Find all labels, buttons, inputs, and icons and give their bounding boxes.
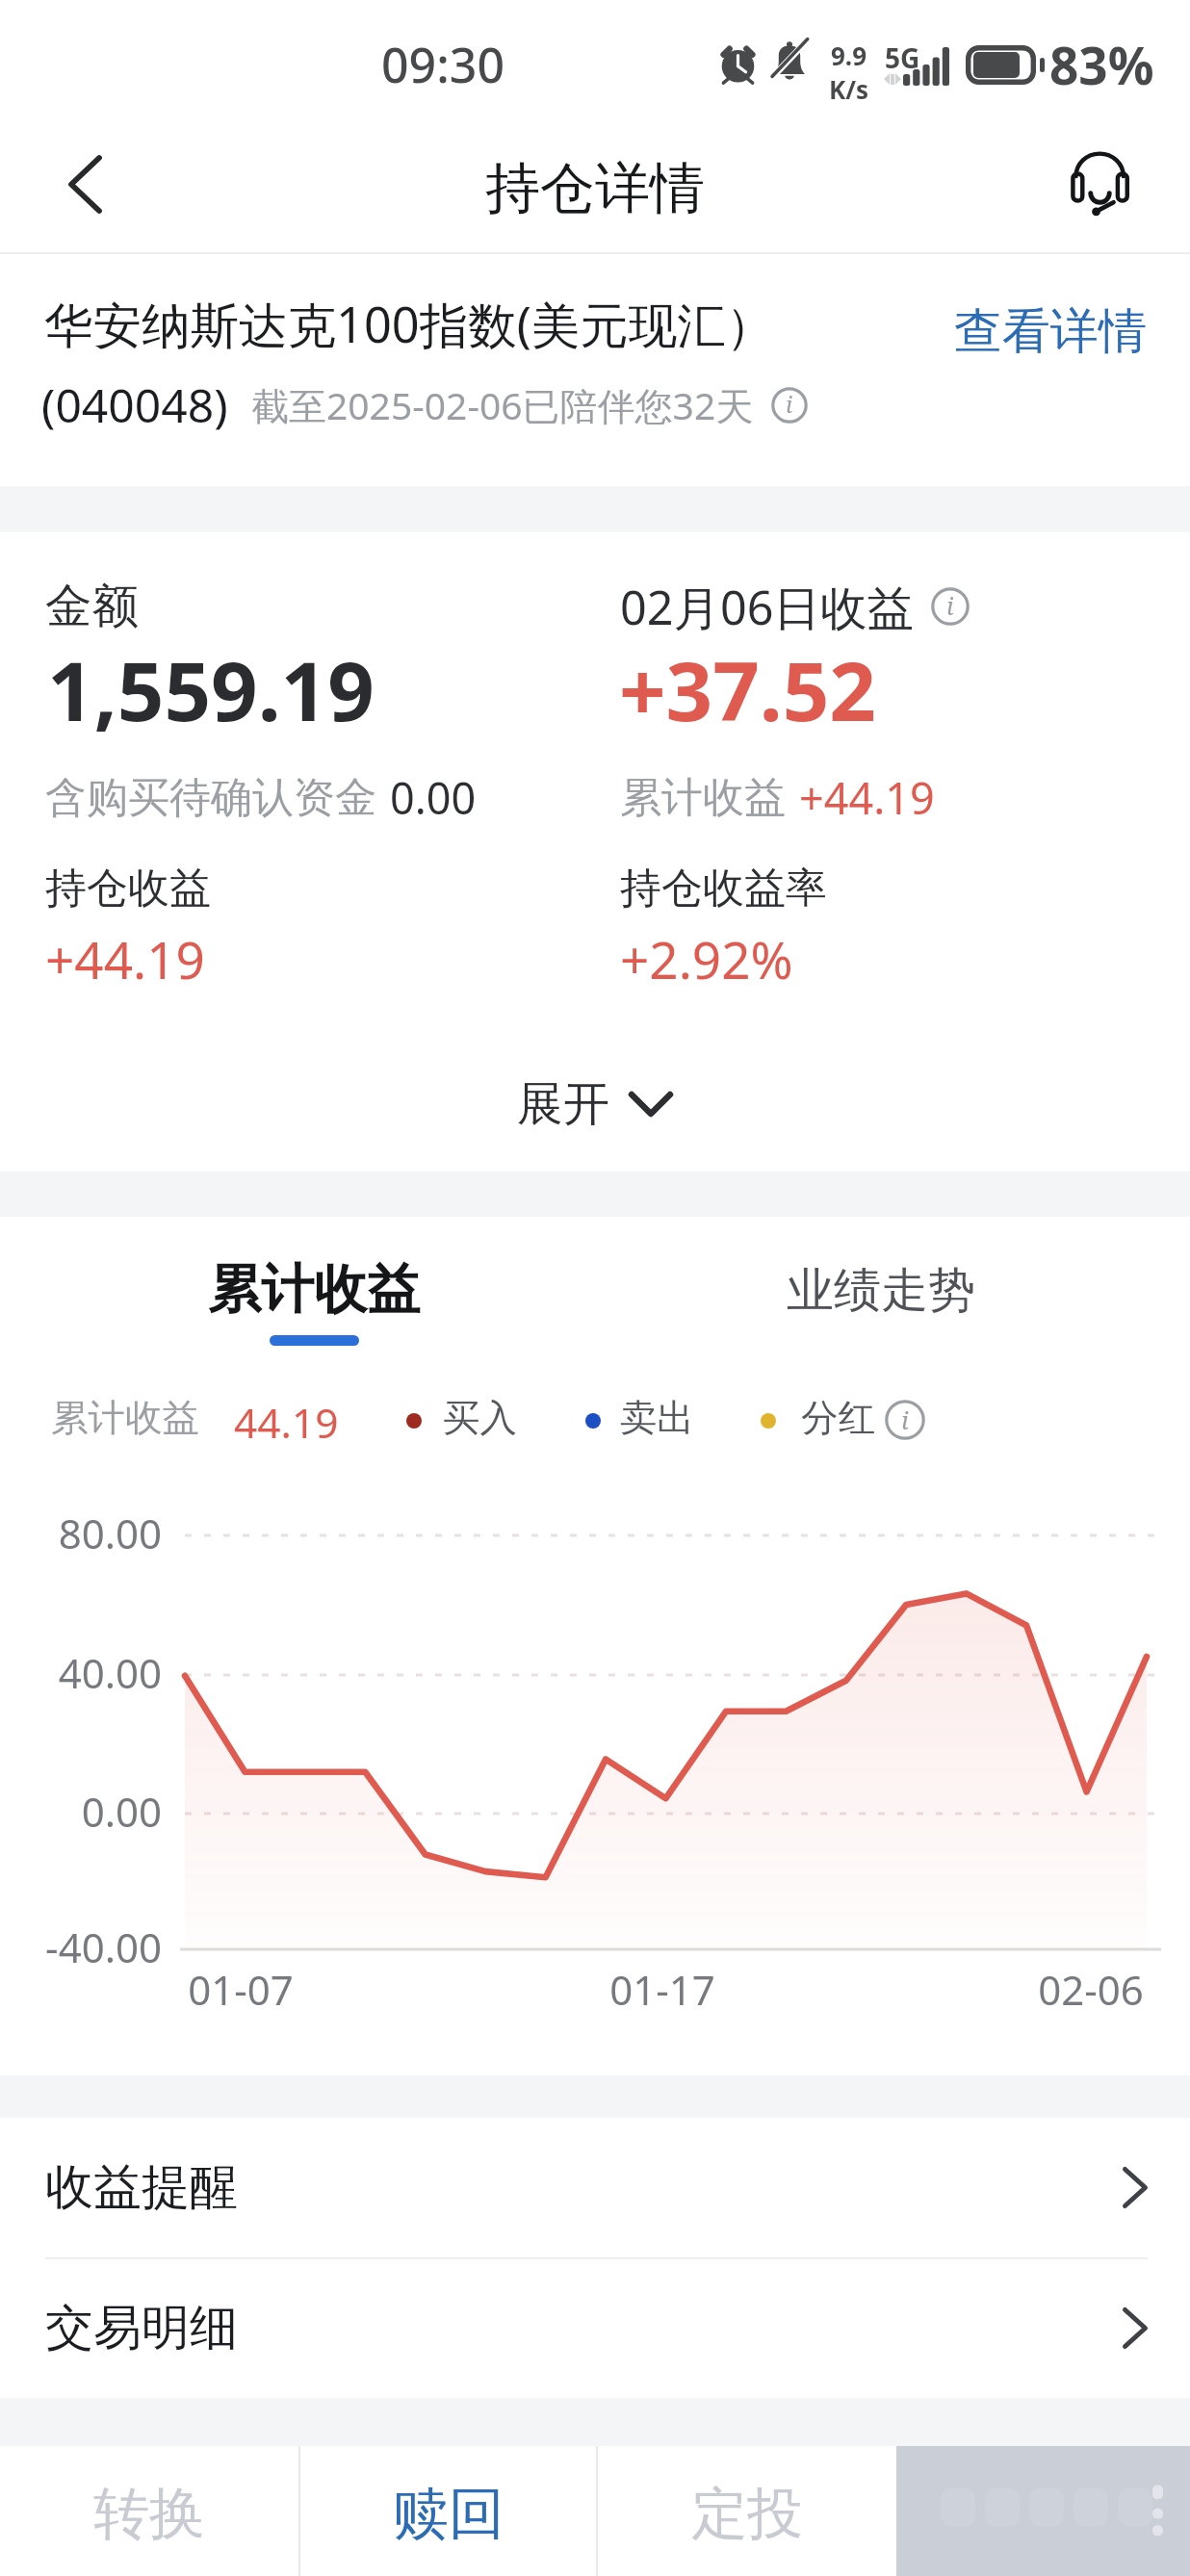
staticText: 02月06日收益 [620, 575, 914, 638]
staticText: 截至2025-02-06已陪伴您32天 [251, 379, 754, 430]
staticText: 金额 [45, 577, 139, 635]
button[interactable]: 收益提醒 [0, 2118, 1190, 2257]
staticText: 业绩走势 [787, 1261, 975, 1321]
staticText: 展开 [517, 1075, 609, 1133]
staticText: (040048) [41, 374, 228, 436]
staticText: i [786, 389, 793, 420]
staticText: K/s [829, 72, 869, 106]
staticText: 累计收益 [51, 1395, 199, 1442]
button[interactable]: Back [25, 117, 144, 250]
staticText: 9.9 [831, 39, 867, 72]
staticText: 查看详情 [954, 301, 1147, 362]
staticText: 卖出 [620, 1395, 694, 1442]
button[interactable]: 累计收益 [208, 1256, 420, 1346]
button[interactable]: More information [885, 1400, 925, 1440]
staticText: i [901, 1403, 909, 1436]
button[interactable]: More information [931, 587, 970, 626]
staticText: 09:30 [381, 32, 504, 97]
button[interactable]: More information [771, 387, 808, 424]
staticText: -40.00 [45, 1919, 162, 1973]
button[interactable]: 转换 [0, 2446, 298, 2576]
staticText: 01-07 [188, 1962, 294, 2016]
staticText: 含购买待确认资金 [45, 772, 376, 824]
staticText: 买入 [443, 1395, 517, 1442]
button[interactable]: 业绩走势 [787, 1261, 975, 1321]
button[interactable]: More actions [896, 2446, 1190, 2576]
staticText: 交易明细 [45, 2298, 238, 2358]
staticText: 持仓收益率 [620, 863, 827, 914]
staticText: +2.92% [620, 924, 793, 993]
button[interactable]: 定投 [598, 2446, 896, 2576]
staticText: 分红 [801, 1395, 875, 1442]
staticText: 收益提醒 [45, 2157, 238, 2218]
staticText: +37.52 [619, 633, 876, 745]
staticText: 01-17 [609, 1962, 715, 2016]
staticText: 累计收益 [620, 772, 786, 824]
staticText: +44.19 [45, 924, 205, 993]
staticText: 80.00 [58, 1506, 162, 1559]
staticText: 0.00 [390, 768, 477, 827]
staticText: +44.19 [799, 768, 935, 827]
button[interactable]: 交易明细 [0, 2257, 1190, 2398]
button[interactable]: Customer service [1053, 138, 1146, 230]
staticText: 1,559.19 [47, 633, 375, 745]
button[interactable]: 赎回 [300, 2446, 596, 2576]
button[interactable]: 展开 [517, 1075, 673, 1133]
staticText: 40.00 [58, 1645, 162, 1699]
staticText: 5G [885, 39, 920, 76]
staticText: 赎回 [393, 2479, 504, 2549]
button[interactable]: 查看详情 [954, 301, 1147, 362]
staticText: 02-06 [1038, 1962, 1144, 2016]
staticText: 定投 [691, 2479, 803, 2549]
staticText: 转换 [93, 2479, 205, 2549]
staticText: i [946, 589, 954, 622]
staticText: 华安纳斯达克100指数(美元现汇） [44, 291, 775, 357]
staticText: 累计收益 [208, 1256, 420, 1323]
staticText: 0.00 [81, 1784, 162, 1838]
staticText: 持仓详情 [485, 154, 705, 223]
staticText: 持仓收益 [45, 863, 211, 914]
staticText: 44.19 [234, 1395, 339, 1451]
staticText: 83% [1049, 30, 1154, 99]
